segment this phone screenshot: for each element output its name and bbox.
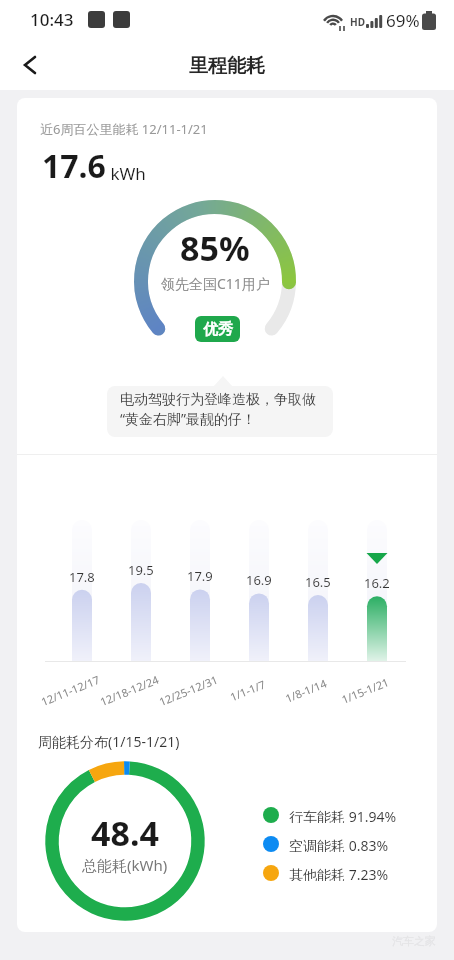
staticText: 16.5 [305, 573, 331, 591]
staticText: 领先全国C11用户 [161, 274, 270, 293]
button[interactable]: 其他能耗 7.23% [263, 865, 389, 881]
staticText: HD [350, 15, 365, 29]
button[interactable]: 空调能耗 0.83% [263, 836, 389, 852]
staticText: 10:43 [30, 8, 74, 31]
staticText: 里程能耗 [189, 54, 265, 78]
staticText: 17.8 [69, 568, 95, 586]
staticText: 48.4 [91, 810, 159, 856]
staticText: 1/15-1/21 [339, 674, 391, 707]
staticText: 17.6 [42, 144, 106, 188]
staticText: 17.9 [187, 567, 213, 585]
staticText: 69% [386, 9, 420, 32]
staticText: 总能耗(kWh) [82, 855, 168, 875]
staticText: 周能耗分布(1/15-1/21) [38, 732, 180, 751]
staticText: 近6周百公里能耗 12/11-1/21 [40, 120, 208, 138]
staticText: 空调能耗 0.83% [289, 836, 389, 852]
staticText: 16.9 [246, 571, 272, 589]
staticText: 12/11-12/17 [39, 671, 103, 709]
staticText: 12/18-12/24 [98, 671, 162, 709]
staticText: 12/25-12/31 [157, 671, 221, 709]
button[interactable]: 行车能耗 91.94% [263, 807, 397, 823]
button[interactable] [14, 48, 48, 82]
staticText: 电动驾驶行为登峰造极，争取做 [120, 391, 316, 409]
staticText: 85% [180, 225, 250, 271]
staticText: “黄金右脚”最靓的仔！ [120, 409, 257, 428]
staticText: 1/1-1/7 [228, 676, 268, 704]
staticText: 16.2 [364, 574, 390, 592]
staticText: kWh [106, 162, 146, 185]
staticText: 1/8-1/14 [283, 675, 329, 706]
staticText: 行车能耗 91.94% [289, 807, 397, 823]
staticText: 其他能耗 7.23% [289, 865, 389, 881]
staticText: 19.5 [128, 561, 154, 579]
staticText: 汽车之家 [392, 934, 436, 948]
staticText: 优秀 [203, 320, 233, 339]
button[interactable]: 优秀 [195, 316, 240, 342]
